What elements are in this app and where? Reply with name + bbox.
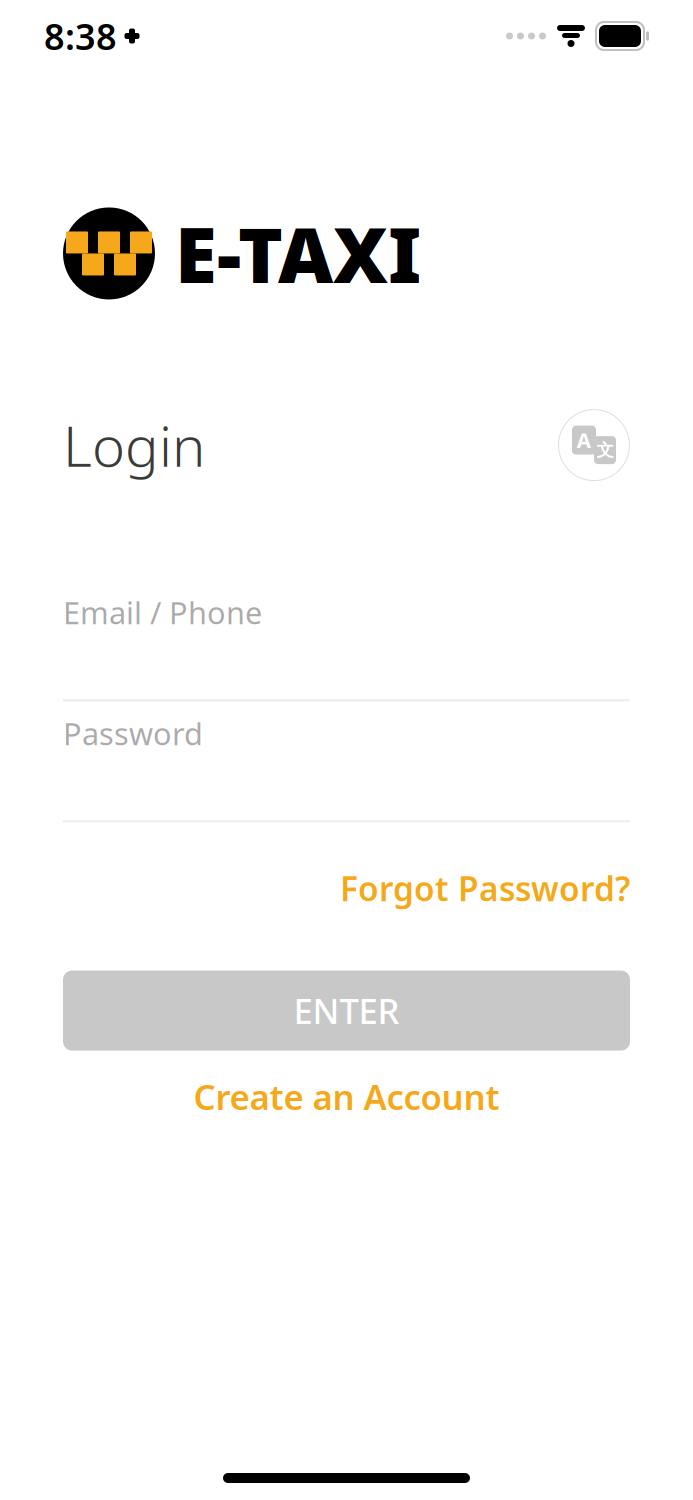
staticText: Password — [63, 713, 203, 754]
button[interactable]: ENTER — [63, 971, 630, 1051]
staticText: 文 — [596, 439, 613, 461]
staticText: A — [576, 426, 591, 454]
staticText: Create an Account — [193, 1073, 499, 1119]
button[interactable]: Password — [63, 701, 630, 822]
staticText: Email / Phone — [63, 592, 262, 633]
staticText: Login — [63, 408, 205, 482]
button[interactable]: Change language — [558, 409, 630, 481]
button[interactable]: Create an Account — [63, 1069, 630, 1125]
button[interactable]: Email / Phone — [63, 580, 630, 701]
staticText: ENTER — [293, 987, 399, 1033]
staticText: 8:38 — [44, 12, 117, 60]
staticText: Forgot Password? — [340, 866, 630, 911]
staticText: E-TAXI — [175, 203, 421, 304]
button[interactable]: Forgot Password? — [340, 860, 630, 917]
